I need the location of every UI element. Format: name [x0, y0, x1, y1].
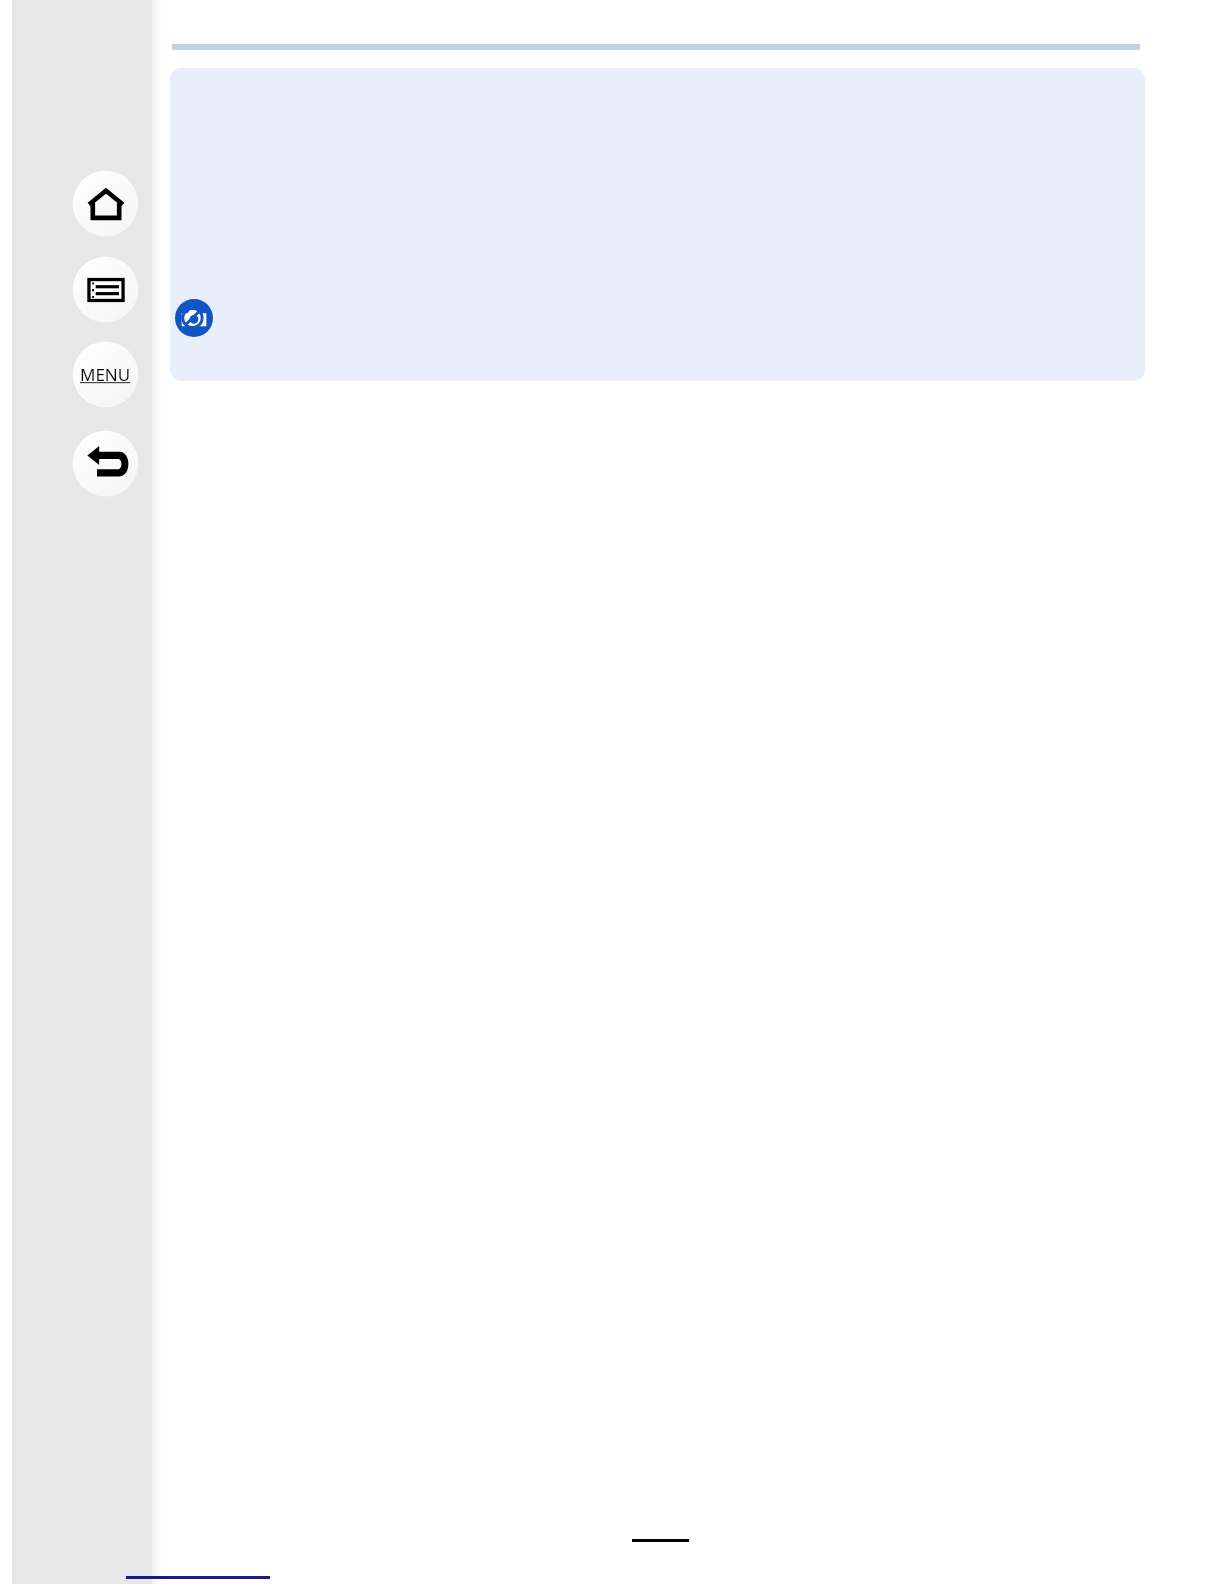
button[interactable]: Record — [71, 255, 140, 324]
button[interactable]: Recording not available — [175, 299, 213, 337]
staticText: MENU — [80, 363, 131, 386]
button[interactable]: MENU — [71, 340, 140, 409]
button[interactable]: Back — [71, 429, 140, 498]
button[interactable]: Home — [71, 169, 140, 238]
